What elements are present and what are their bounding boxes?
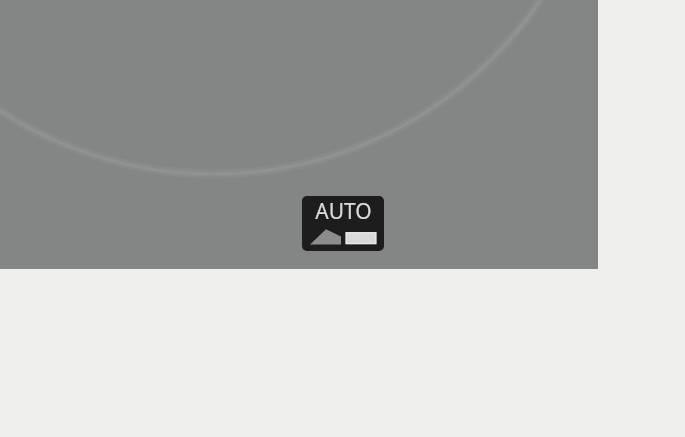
button[interactable]: Auto headlight mode: [302, 196, 384, 251]
staticText: AUTO: [315, 197, 372, 226]
